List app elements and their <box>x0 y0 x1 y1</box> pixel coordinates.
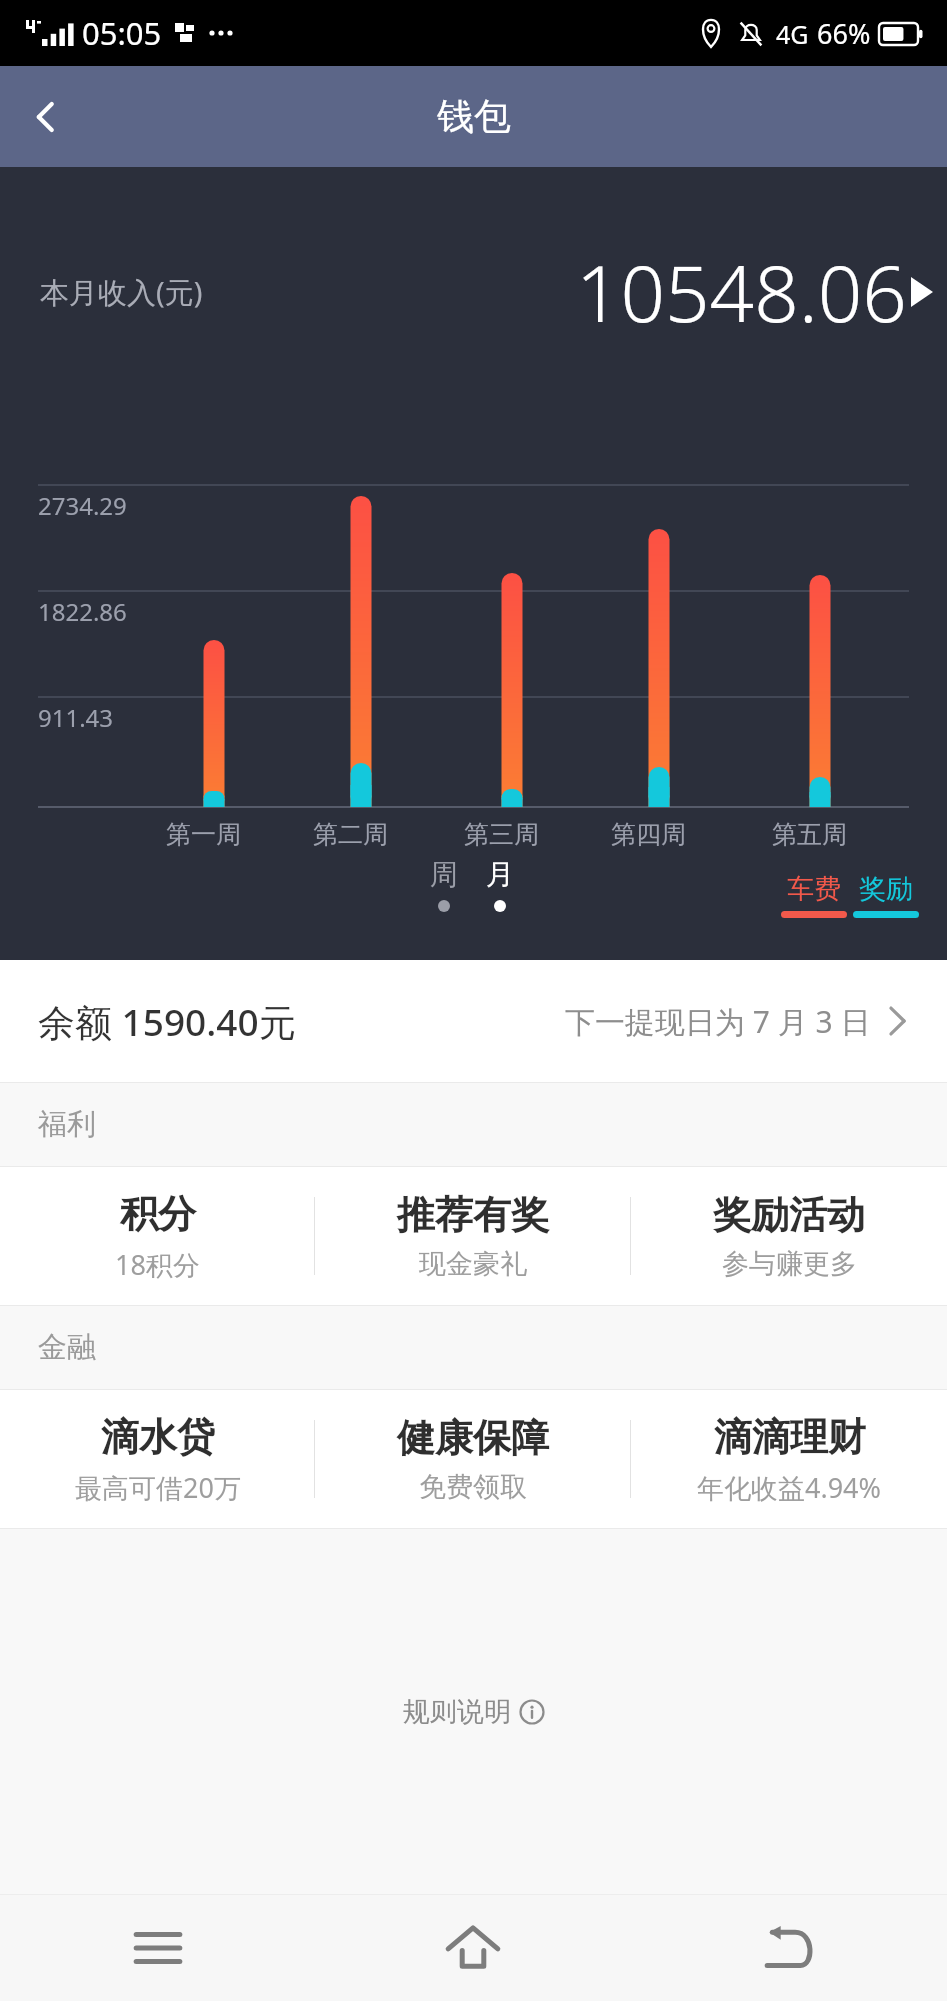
button[interactable]: Home <box>315 1895 631 2001</box>
button[interactable]: 滴水贷 <box>0 1390 315 1528</box>
staticText: 现金豪礼 <box>419 1247 527 1281</box>
staticText: 第三周 <box>464 819 539 850</box>
button[interactable]: 奖励活动 <box>631 1167 947 1305</box>
staticText: 健康保障 <box>397 1414 549 1462</box>
staticText: 下一提现日为 7 月 3 日 <box>565 1001 871 1042</box>
staticText: 参与赚更多 <box>722 1247 857 1281</box>
button[interactable]: 车费 <box>781 872 847 918</box>
button[interactable]: 健康保障 <box>315 1390 631 1528</box>
button[interactable]: Recent apps <box>0 1895 315 2001</box>
staticText: 推荐有奖 <box>397 1191 549 1239</box>
staticText: 1822.86 <box>38 595 127 628</box>
button[interactable]: 月 <box>480 857 520 892</box>
button[interactable]: 规则说明 <box>391 1683 557 1741</box>
staticText: 福利 <box>38 1106 96 1143</box>
button[interactable]: 滴滴理财 <box>631 1390 947 1528</box>
staticText: 本月收入(元) <box>40 272 203 312</box>
button[interactable]: 余额 1590.40元 <box>0 960 947 1082</box>
button[interactable]: 周 <box>424 857 464 892</box>
staticText: 18积分 <box>115 1246 200 1283</box>
button[interactable]: 10548.06 <box>576 239 933 345</box>
staticText: 奖励活动 <box>713 1191 865 1239</box>
staticText: 第一周 <box>166 819 241 850</box>
staticText: 车费 <box>787 872 841 906</box>
staticText: 66% <box>817 15 871 52</box>
staticText: 10548.06 <box>576 239 907 345</box>
staticText: 钱包 <box>437 93 511 140</box>
staticText: 免费领取 <box>419 1470 527 1504</box>
button[interactable]: 奖励 <box>853 872 919 918</box>
button[interactable]: 推荐有奖 <box>315 1167 631 1305</box>
staticText: 滴滴理财 <box>714 1413 866 1461</box>
staticText: 积分 <box>120 1190 196 1238</box>
staticText: 滴水贷 <box>101 1413 215 1461</box>
staticText: 余额 1590.40元 <box>38 996 296 1047</box>
staticText: 周 <box>430 857 458 892</box>
staticText: 金融 <box>38 1329 96 1366</box>
staticText: 第二周 <box>313 819 388 850</box>
staticText: 奖励 <box>859 872 913 906</box>
button[interactable]: Back <box>0 71 92 163</box>
button[interactable]: 积分 <box>0 1167 315 1305</box>
staticText: 911.43 <box>38 701 114 734</box>
button[interactable]: Back <box>631 1895 947 2001</box>
staticText: 2734.29 <box>38 489 127 522</box>
staticText: 05:05 <box>82 12 162 54</box>
staticText: 月 <box>486 857 514 892</box>
staticText: 第四周 <box>611 819 686 850</box>
staticText: 规则说明 <box>403 1695 511 1729</box>
staticText: 最高可借20万 <box>75 1469 241 1506</box>
staticText: 4G <box>776 17 809 51</box>
staticText: 年化收益4.94% <box>697 1469 882 1506</box>
staticText: 第五周 <box>772 819 847 850</box>
